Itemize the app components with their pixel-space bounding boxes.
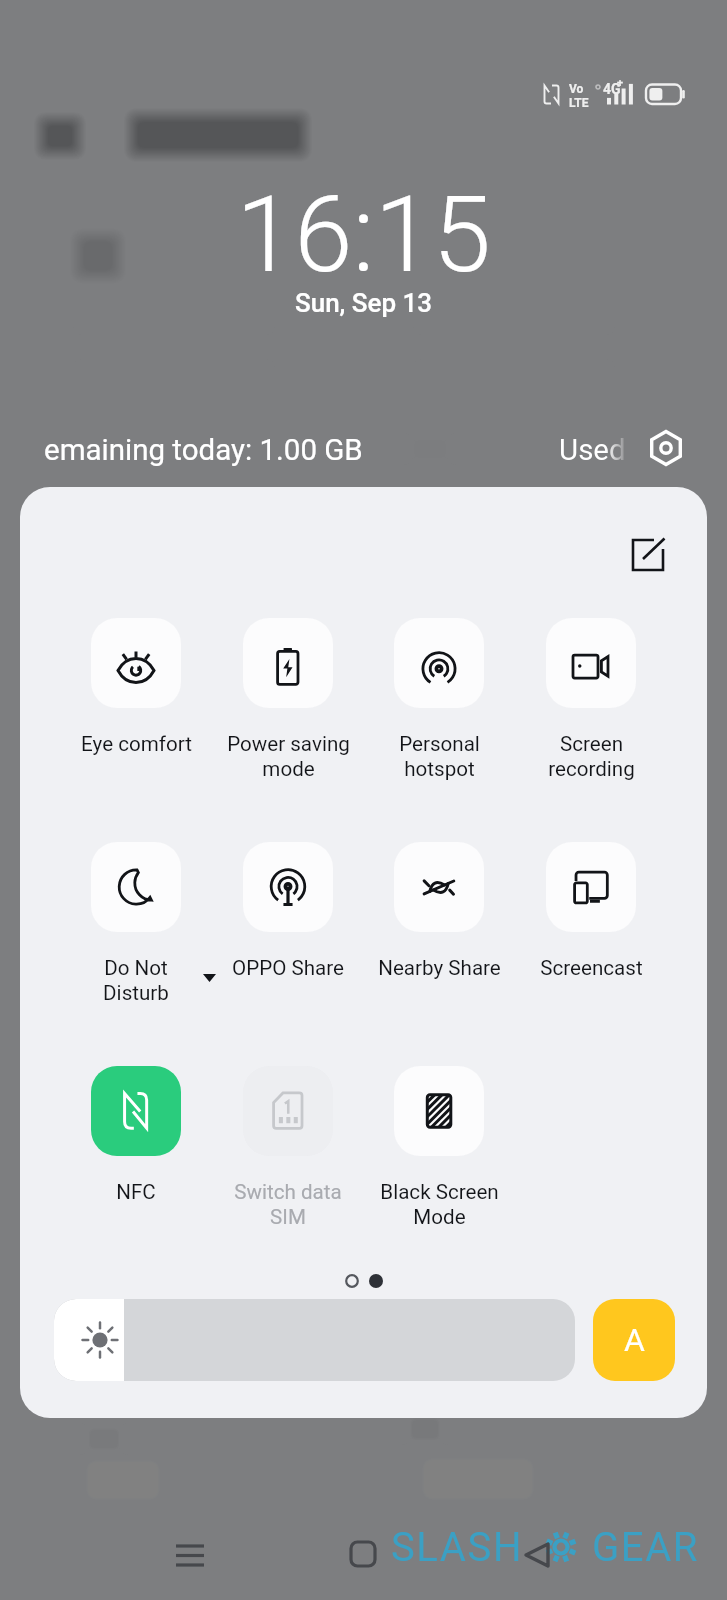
staticText: Vo	[569, 82, 584, 96]
button[interactable]: Home	[329, 1520, 397, 1588]
staticText: SLASH	[391, 1524, 524, 1571]
button[interactable]: OPPO Share	[243, 842, 333, 932]
staticText: Black Screen Mode	[380, 1180, 499, 1229]
staticText: emaining today: 1.00 GB	[44, 433, 363, 468]
button[interactable]: NFC	[91, 1066, 181, 1156]
staticText: Eye comfort	[81, 732, 192, 756]
staticText: GEAR	[592, 1524, 700, 1571]
staticText: A	[624, 1321, 645, 1359]
staticText: Used	[559, 433, 626, 468]
button[interactable]: Do Not Disturb	[91, 842, 181, 932]
staticText: Screencast	[540, 956, 643, 980]
staticText: 4G	[603, 81, 621, 97]
staticText: Personal hotspot	[399, 732, 480, 781]
button[interactable]: Brightness	[54, 1299, 575, 1381]
staticText: OPPO Share	[232, 956, 344, 980]
staticText: NFC	[116, 1180, 156, 1204]
button[interactable]: Do Not Disturb options	[183, 948, 235, 1000]
button[interactable]: Black Screen Mode	[394, 1066, 484, 1156]
staticText: Switch data SIM	[234, 1180, 342, 1229]
button[interactable]: A	[593, 1299, 675, 1381]
staticText: Nearby Share	[378, 956, 501, 980]
button[interactable]: Power saving mode	[243, 618, 333, 708]
staticText: 16:15	[236, 174, 492, 297]
button[interactable]: Recent apps	[156, 1521, 224, 1589]
button[interactable]: Eye comfort	[91, 618, 181, 708]
button[interactable]: Screen recording	[546, 618, 636, 708]
staticText: Do Not Disturb	[103, 956, 169, 1005]
staticText: Screen recording	[548, 732, 635, 781]
staticText: LTE	[569, 96, 589, 110]
button[interactable]: Switch data SIM	[243, 1066, 333, 1156]
button[interactable]: Nearby Share	[394, 842, 484, 932]
button[interactable]: Edit quick settings	[620, 527, 676, 583]
button[interactable]: Data usage settings	[645, 427, 687, 469]
staticText: Sun, Sep 13	[295, 288, 433, 318]
staticText: +	[617, 77, 624, 90]
button[interactable]: Back	[503, 1521, 571, 1589]
button[interactable]: Personal hotspot	[394, 618, 484, 708]
button[interactable]: Screencast	[546, 842, 636, 932]
staticText: Power saving mode	[227, 732, 350, 781]
